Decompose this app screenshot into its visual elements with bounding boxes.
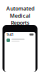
staticText: Automated Medical Reports (6, 5, 34, 26)
staticText: 9:41 (6, 32, 13, 37)
